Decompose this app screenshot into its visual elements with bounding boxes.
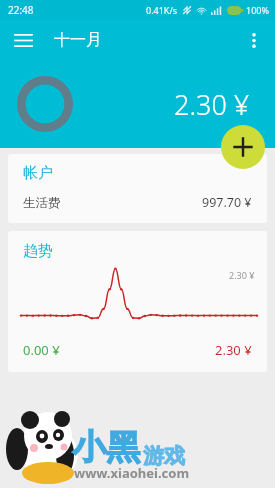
staticText: 生活费 bbox=[23, 195, 61, 211]
button[interactable]: 帐户 bbox=[8, 154, 267, 223]
staticText: 帐户 bbox=[23, 164, 53, 183]
staticText: 100% bbox=[246, 4, 269, 16]
staticText: 997.70 ¥ bbox=[202, 194, 252, 211]
staticText: 趋势 bbox=[23, 242, 53, 261]
button[interactable]: Navigation menu bbox=[8, 25, 38, 55]
staticText: 十一月 bbox=[54, 30, 102, 50]
staticText: 22:48 bbox=[8, 3, 34, 17]
button[interactable]: More options bbox=[239, 25, 269, 55]
staticText: 2.30 ¥ bbox=[215, 341, 252, 359]
staticText: 0.00 ¥ bbox=[23, 341, 60, 359]
button[interactable]: 趋势 bbox=[8, 231, 267, 372]
staticText: 游戏 bbox=[143, 443, 185, 469]
button[interactable]: Add record bbox=[221, 125, 265, 169]
staticText: 2.30 ¥ bbox=[229, 269, 255, 281]
staticText: 0.41K/s bbox=[146, 4, 178, 16]
staticText: www.xiaohei.com bbox=[74, 464, 190, 482]
staticText: 小黑 bbox=[72, 426, 140, 469]
staticText: 2.30 ¥ bbox=[174, 86, 250, 123]
